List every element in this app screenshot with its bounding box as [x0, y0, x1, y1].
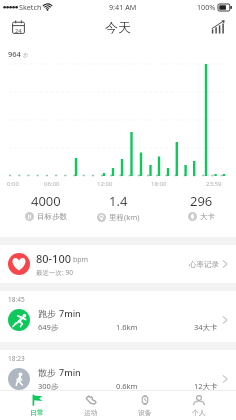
staticText: 设备 [138, 408, 152, 417]
staticText: 心率记录 [189, 260, 219, 269]
button[interactable]: 18:23 [0, 350, 236, 401]
staticText: 里程(km) [109, 212, 140, 222]
staticText: 7min [59, 366, 81, 378]
staticText: 9:41 AM [109, 2, 137, 12]
staticText: 34大卡 [194, 322, 218, 332]
staticText: 18:23 [8, 354, 25, 363]
button[interactable]: 4000 [10, 192, 82, 221]
staticText: 100% [197, 2, 216, 12]
staticText: 06:00 [44, 180, 60, 188]
button[interactable]: 日常 [10, 391, 64, 420]
staticText: 649步 [38, 322, 116, 332]
staticText: 296 [190, 192, 213, 210]
button[interactable]: 18:45 [0, 291, 236, 342]
button[interactable]: 设备 [118, 391, 172, 420]
button[interactable]: Statistics [208, 17, 228, 37]
staticText: 300步 [38, 381, 116, 391]
staticText: 个人 [192, 408, 206, 417]
button[interactable]: 296 [165, 192, 236, 221]
staticText: 24 [15, 27, 22, 34]
staticText: 目标步数 [37, 212, 67, 221]
staticText: 大卡 [200, 212, 215, 221]
staticText: 0:00 [7, 180, 19, 188]
staticText: 23:59 [206, 180, 222, 188]
staticText: Sketch [19, 2, 42, 12]
staticText: 1.6km [116, 322, 194, 332]
staticText: 1.4 [109, 192, 128, 210]
staticText: 步 [23, 52, 29, 59]
staticText: 散步 [38, 367, 56, 378]
staticText: 12大卡 [194, 381, 218, 391]
button[interactable]: 运动 [64, 391, 118, 420]
staticText: 最近一次: 90 [36, 268, 73, 277]
staticText: 运动 [84, 408, 98, 417]
staticText: 12:00 [97, 180, 113, 188]
button[interactable]: 个人 [172, 391, 226, 420]
staticText: 4000 [31, 192, 61, 210]
staticText: 7min [59, 307, 81, 319]
staticText: 18:00 [151, 180, 167, 188]
button[interactable]: Calendar [8, 17, 28, 37]
staticText: 0.6km [116, 381, 194, 391]
button[interactable]: 80-100 [0, 245, 236, 283]
staticText: 18:45 [8, 295, 25, 304]
staticText: 今天 [105, 19, 131, 35]
staticText: bpm [73, 255, 89, 265]
staticText: 964 [8, 49, 21, 59]
staticText: 日常 [30, 408, 44, 417]
staticText: 80-100 [36, 251, 71, 266]
staticText: 跑步 [38, 308, 56, 319]
button[interactable]: 1.4 [82, 192, 154, 222]
